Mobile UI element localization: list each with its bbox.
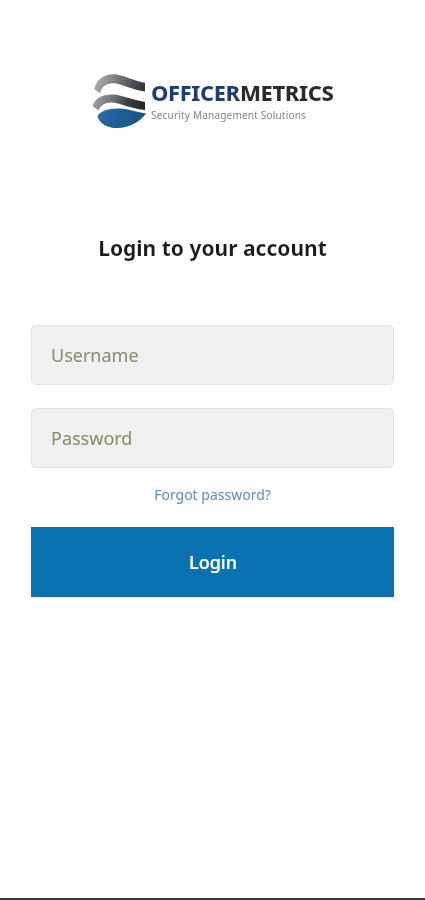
staticText: OFFICER: [151, 77, 240, 107]
button[interactable]: Login: [31, 527, 394, 597]
button[interactable]: Username: [31, 325, 394, 385]
staticText: Security Management Solutions: [151, 108, 307, 122]
staticText: METRICS: [240, 77, 334, 107]
staticText: Username: [51, 343, 139, 368]
button[interactable]: Password: [31, 408, 394, 468]
staticText: Forgot password?: [154, 485, 271, 504]
staticText: Login to your account: [0, 234, 425, 263]
staticText: Login: [189, 550, 237, 575]
button[interactable]: Forgot password?: [0, 482, 425, 507]
staticText: Password: [51, 426, 133, 451]
other: OfficerMetrics logo: [91, 70, 145, 128]
